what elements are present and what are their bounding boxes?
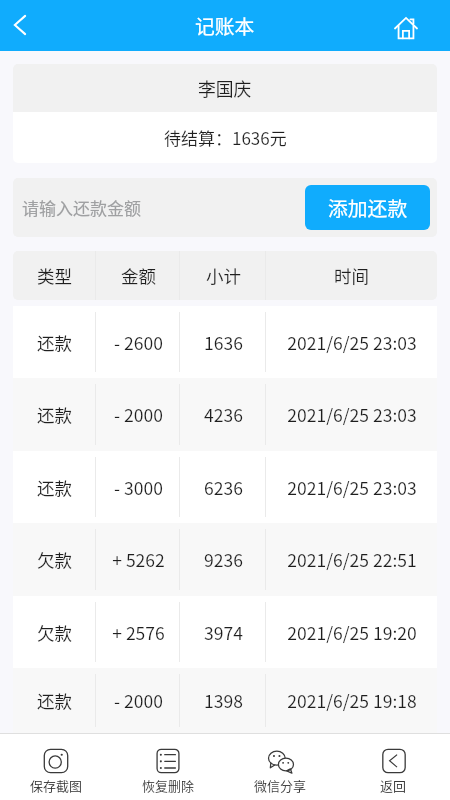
staticText: 2021/6/25 19:20 bbox=[287, 620, 417, 645]
staticText: 保存截图 bbox=[30, 776, 83, 795]
staticText: 请输入还款金额 bbox=[22, 195, 141, 220]
staticText: 3974 bbox=[204, 620, 243, 645]
staticText: 欠款 bbox=[37, 620, 72, 645]
staticText: - 2600 bbox=[114, 330, 163, 355]
staticText: 1398 bbox=[204, 688, 243, 713]
staticText: 2021/6/25 19:18 bbox=[287, 688, 417, 713]
staticText: 还款 bbox=[37, 402, 72, 427]
button[interactable]: 还款 bbox=[13, 378, 437, 451]
staticText: 李国庆 bbox=[198, 75, 252, 101]
staticText: 时间 bbox=[334, 263, 369, 288]
button[interactable]: 还款 bbox=[13, 668, 437, 733]
staticText: 恢复删除 bbox=[142, 776, 195, 795]
button[interactable]: 欠款 bbox=[13, 596, 437, 668]
staticText: 2021/6/25 23:03 bbox=[287, 330, 417, 355]
staticText: 还款 bbox=[37, 330, 72, 355]
staticText: 2021/6/25 22:51 bbox=[287, 547, 417, 572]
staticText: 1636 bbox=[204, 330, 243, 355]
staticText: 记账本 bbox=[195, 11, 255, 40]
button[interactable]: 还款 bbox=[13, 306, 437, 378]
button[interactable]: 还款 bbox=[13, 451, 437, 523]
staticText: 2021/6/25 23:03 bbox=[287, 475, 417, 500]
staticText: - 3000 bbox=[114, 475, 163, 500]
staticText: 微信分享 bbox=[254, 776, 307, 795]
staticText: 待结算：1636元 bbox=[164, 125, 287, 150]
button[interactable]: 恢复删除 bbox=[112, 734, 224, 800]
staticText: 欠款 bbox=[37, 547, 72, 572]
staticText: + 2576 bbox=[112, 620, 165, 645]
staticText: 添加还款 bbox=[328, 193, 408, 222]
button[interactable]: 返回 bbox=[337, 734, 450, 800]
staticText: 返回 bbox=[380, 776, 407, 795]
staticText: 还款 bbox=[37, 688, 72, 713]
button[interactable]: Back bbox=[0, 5, 40, 45]
staticText: 4236 bbox=[204, 402, 243, 427]
staticText: 9236 bbox=[204, 547, 243, 572]
staticText: - 2000 bbox=[114, 688, 163, 713]
staticText: 金额 bbox=[121, 263, 156, 288]
staticText: 还款 bbox=[37, 475, 72, 500]
staticText: - 2000 bbox=[114, 402, 163, 427]
button[interactable]: 添加还款 bbox=[305, 185, 430, 230]
staticText: 6236 bbox=[204, 475, 243, 500]
staticText: 2021/6/25 23:03 bbox=[287, 402, 417, 427]
button[interactable]: 微信分享 bbox=[224, 734, 337, 800]
button[interactable]: 保存截图 bbox=[0, 734, 112, 800]
button[interactable]: 欠款 bbox=[13, 523, 437, 596]
staticText: 类型 bbox=[37, 263, 72, 288]
staticText: 小计 bbox=[206, 263, 241, 288]
staticText: + 5262 bbox=[112, 547, 165, 572]
button[interactable]: Home bbox=[386, 8, 426, 48]
